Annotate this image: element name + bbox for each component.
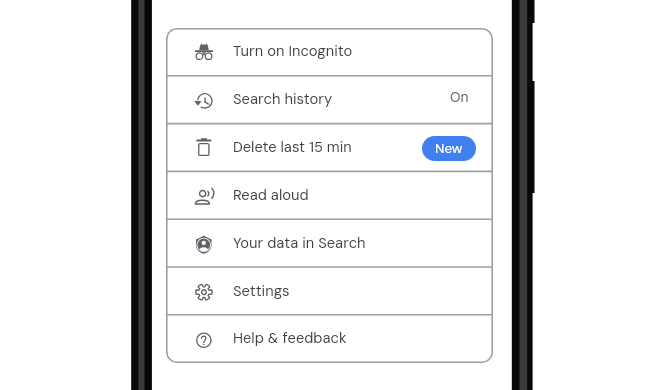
button[interactable]: Delete last 15 min <box>166 124 493 172</box>
button[interactable]: Help & feedback <box>166 316 493 363</box>
staticText: Turn on Incognito <box>233 41 353 60</box>
button[interactable]: Your data in Search <box>166 220 493 268</box>
staticText: Help & feedback <box>233 328 347 347</box>
button[interactable]: Read aloud <box>166 172 493 220</box>
button[interactable]: Settings <box>166 268 493 316</box>
staticText: New <box>435 140 463 158</box>
button[interactable]: New <box>422 136 476 161</box>
staticText: On <box>450 88 469 106</box>
staticText: Settings <box>233 281 290 300</box>
staticText: Your data in Search <box>233 233 366 252</box>
button[interactable]: Turn on Incognito <box>166 28 493 76</box>
staticText: Delete last 15 min <box>233 137 352 156</box>
staticText: Read aloud <box>233 185 309 204</box>
staticText: Search history <box>233 89 333 108</box>
button[interactable]: Search history <box>166 76 493 124</box>
